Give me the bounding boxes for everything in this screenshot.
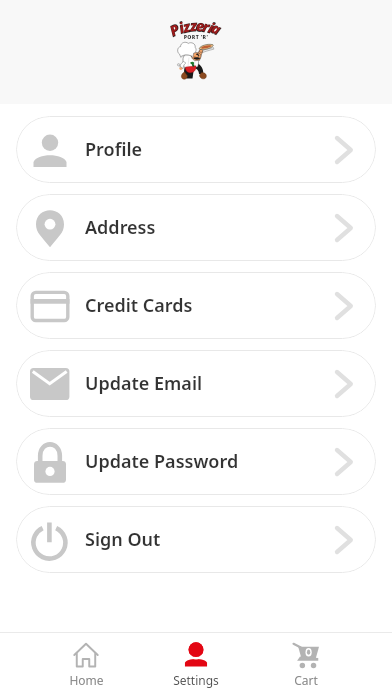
staticText: z (189, 14, 198, 37)
staticText: z (180, 15, 193, 38)
staticText: z (181, 16, 192, 37)
staticText: i (176, 18, 187, 37)
button[interactable]: Settings (141, 642, 251, 688)
staticText: r (201, 16, 212, 37)
staticText: e (195, 16, 206, 35)
button[interactable]: Update Email (16, 350, 376, 417)
staticText: i (205, 16, 218, 39)
staticText: e (195, 14, 206, 37)
button[interactable]: Update Password (16, 428, 376, 495)
staticText: Credit Cards (85, 293, 193, 318)
staticText: Address (85, 215, 156, 240)
staticText: Update Password (85, 449, 239, 474)
button[interactable]: Cart (251, 642, 361, 688)
staticText: P (166, 19, 183, 40)
staticText: i (206, 18, 217, 37)
staticText: i (175, 16, 188, 39)
button[interactable]: Home (31, 642, 141, 688)
staticText: Settings (173, 672, 219, 688)
staticText: Sign Out (85, 527, 161, 552)
button[interactable]: Profile (16, 116, 376, 183)
button[interactable]: Sign Out (16, 506, 376, 573)
staticText: PORT 'R' (153, 33, 239, 40)
staticText: a (207, 16, 226, 40)
staticText: r (200, 15, 213, 38)
staticText: Profile (85, 137, 143, 162)
staticText: Home (69, 672, 104, 688)
staticText: a (208, 18, 225, 39)
staticText: Cart (294, 672, 318, 688)
staticText: z (189, 16, 198, 35)
button[interactable]: Address (16, 194, 376, 261)
staticText: P (165, 17, 184, 41)
staticText: Update Email (85, 371, 203, 396)
button[interactable]: Credit Cards (16, 272, 376, 339)
